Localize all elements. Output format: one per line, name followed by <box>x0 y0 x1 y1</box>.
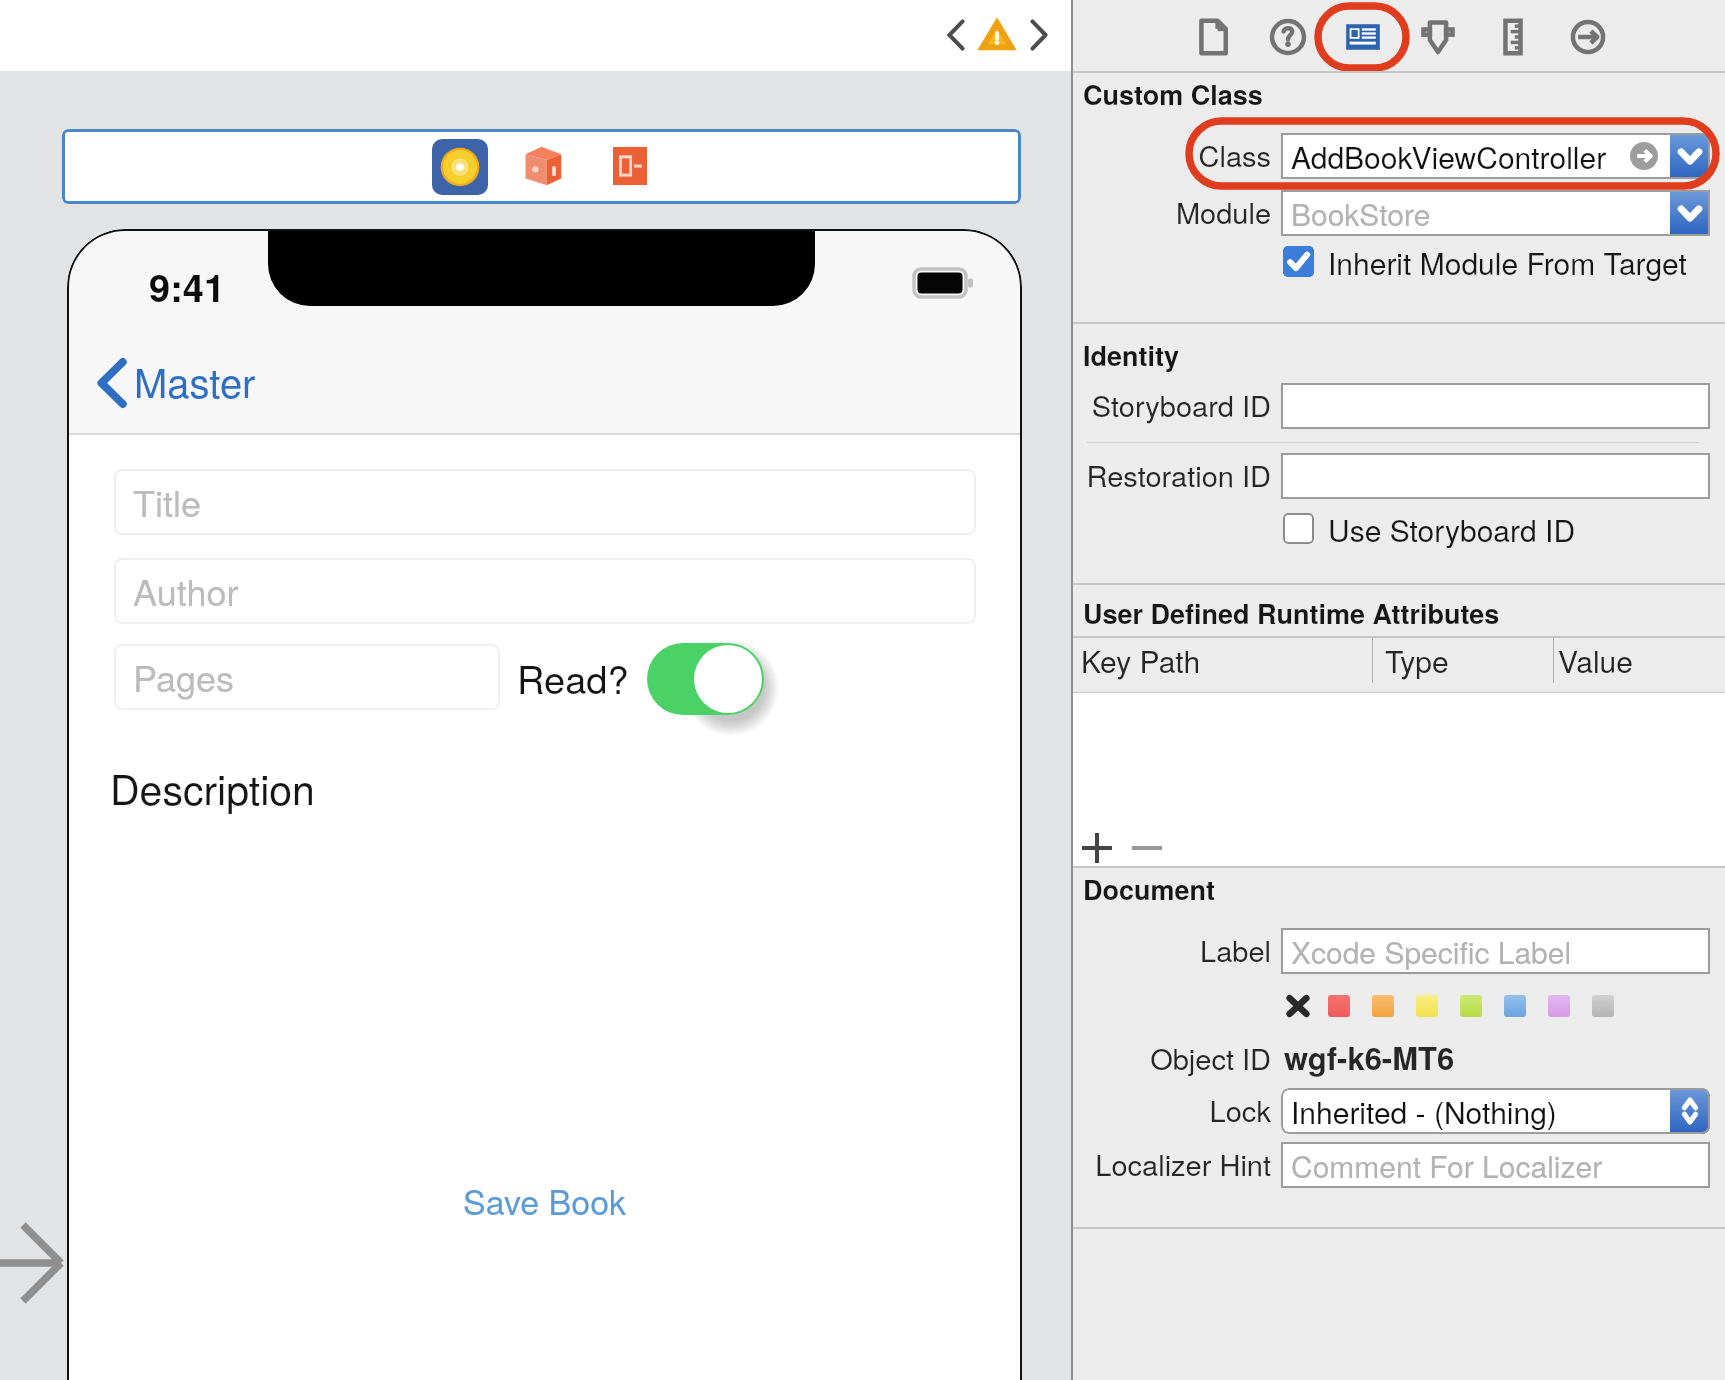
button[interactable]: Label colour 4 <box>1460 995 1482 1017</box>
staticText: AddBookViewController <box>1291 135 1607 178</box>
staticText: Label <box>1073 929 1271 971</box>
button[interactable]: Lock options <box>1670 1088 1710 1134</box>
staticText: Storyboard ID <box>1073 384 1271 426</box>
staticText: Inherited - (Nothing) <box>1291 1090 1557 1133</box>
button[interactable] <box>1281 453 1710 499</box>
button[interactable]: Author <box>114 558 976 624</box>
button[interactable]: BookStore <box>1281 190 1710 236</box>
button[interactable]: Label colour 1 <box>1328 995 1350 1017</box>
staticText: Pages <box>133 651 234 703</box>
staticText: BookStore <box>1291 192 1431 235</box>
button[interactable]: Show the File inspector <box>1184 8 1242 66</box>
button[interactable]: Label colour 3 <box>1416 995 1438 1017</box>
button[interactable]: AddBookViewController <box>1281 133 1710 179</box>
button[interactable]: Comment For Localizer <box>1281 1142 1710 1188</box>
button[interactable]: Next <box>1024 16 1054 54</box>
staticText: Description <box>110 758 315 817</box>
button[interactable]: Module options <box>1670 190 1710 236</box>
button[interactable]: Save Book <box>67 1170 1022 1230</box>
button[interactable]: Inherit Module From Target <box>1283 241 1687 281</box>
button[interactable]: Label colour 6 <box>1548 995 1570 1017</box>
button[interactable]: Pages <box>114 644 500 710</box>
button[interactable]: Show the Quick Help inspector <box>1259 8 1317 66</box>
staticText: Object ID <box>1073 1037 1271 1079</box>
button[interactable]: Label colour 2 <box>1372 995 1394 1017</box>
button[interactable]: Previous <box>941 16 971 54</box>
staticText: Key Path <box>1081 639 1201 682</box>
staticText: Identity <box>1083 336 1180 375</box>
button[interactable]: Exit <box>613 147 647 185</box>
button[interactable] <box>1281 383 1710 429</box>
button[interactable]: Add runtime attribute <box>1082 833 1112 863</box>
staticText: Inherit Module From Target <box>1328 241 1687 281</box>
button[interactable]: View controller <box>432 139 488 195</box>
staticText: Type <box>1385 639 1449 682</box>
button[interactable]: Show the Attributes inspector <box>1409 8 1467 66</box>
staticText: Module <box>1073 191 1271 233</box>
button[interactable]: Show the Identity inspector <box>1334 8 1392 66</box>
staticText: Class <box>1073 134 1271 176</box>
staticText: Custom Class <box>1083 75 1263 114</box>
staticText: User Defined Runtime Attributes <box>1083 594 1500 633</box>
button[interactable]: First responder <box>524 145 562 187</box>
button[interactable]: Label colour 5 <box>1504 995 1526 1017</box>
staticText: Use Storyboard ID <box>1328 508 1576 548</box>
staticText: 9:41 <box>149 259 226 313</box>
button[interactable]: Xcode Specific Label <box>1281 928 1710 974</box>
button[interactable]: Remove runtime attribute <box>1132 833 1162 863</box>
button[interactable]: Title <box>114 469 976 535</box>
button[interactable]: Use Storyboard ID <box>1283 508 1576 548</box>
staticText: wgf-k6-MT6 <box>1284 1035 1455 1079</box>
staticText: Title <box>133 476 202 528</box>
button[interactable]: Master <box>97 353 256 413</box>
staticText: Comment For Localizer <box>1291 1144 1603 1187</box>
button[interactable]: Class options <box>1670 133 1710 179</box>
button[interactable]: Show the Size inspector <box>1484 8 1542 66</box>
button[interactable]: Label colour 7 <box>1592 995 1614 1017</box>
button[interactable]: No label colour <box>1287 995 1309 1017</box>
staticText: Lock <box>1073 1089 1271 1131</box>
staticText: Value <box>1558 639 1633 682</box>
staticText: Restoration ID <box>1073 454 1271 496</box>
staticText: Xcode Specific Label <box>1291 930 1572 973</box>
staticText: Read? <box>517 650 629 704</box>
button[interactable]: Show the Connections inspector <box>1559 8 1617 66</box>
staticText: Master <box>134 352 256 409</box>
staticText: Author <box>133 565 239 617</box>
button[interactable]: Read toggle <box>647 643 764 715</box>
button[interactable]: Inherited - (Nothing) <box>1281 1088 1710 1134</box>
staticText: Localizer Hint <box>1073 1143 1271 1185</box>
staticText: Save Book <box>463 1176 627 1225</box>
staticText: Document <box>1083 870 1216 909</box>
